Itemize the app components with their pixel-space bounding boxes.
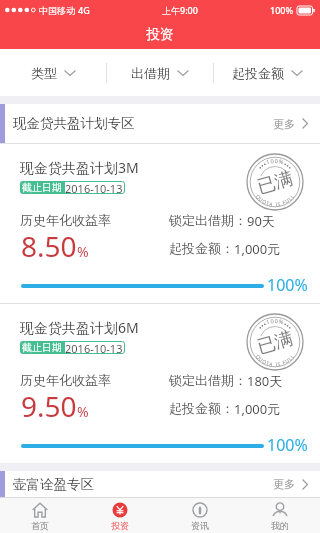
staticText: 起投金额 bbox=[232, 65, 284, 81]
button[interactable]: 现金贷共盈计划专区 bbox=[0, 104, 320, 143]
staticText: 4G bbox=[78, 4, 90, 16]
staticText: 资讯 bbox=[191, 520, 209, 531]
staticText: 首页 bbox=[31, 520, 49, 531]
staticText: 上午9:00 bbox=[162, 4, 198, 16]
staticText: 100% bbox=[267, 434, 308, 456]
button[interactable]: 起投金额 bbox=[214, 49, 320, 96]
staticText: 2016-10-13 bbox=[65, 341, 123, 354]
staticText: 90天 bbox=[247, 212, 275, 230]
staticText: 180天 bbox=[247, 372, 283, 390]
staticText: 更多 bbox=[273, 117, 295, 131]
staticText: 投资 bbox=[111, 520, 129, 531]
staticText: 壶富诠盈专区 bbox=[13, 476, 94, 493]
staticText: 100% bbox=[267, 274, 308, 296]
staticText: 9.50 bbox=[21, 387, 77, 425]
button[interactable]: 投资 bbox=[80, 498, 160, 533]
staticText: 2016-10-13 bbox=[65, 181, 123, 194]
staticText: 8.50 bbox=[21, 227, 77, 265]
button[interactable]: 现金贷共盈计划3M bbox=[0, 144, 320, 303]
staticText: 出借期 bbox=[131, 65, 170, 81]
staticText: 1,000元 bbox=[234, 240, 281, 258]
button[interactable]: 类型 bbox=[0, 49, 106, 96]
button[interactable]: 首页 bbox=[0, 498, 80, 533]
staticText: 投资 bbox=[146, 26, 174, 44]
staticText: 100% bbox=[270, 4, 294, 16]
staticText: 锁定出借期： bbox=[169, 212, 247, 228]
staticText: 我的 bbox=[271, 520, 289, 531]
staticText: 现金贷共盈计划专区 bbox=[13, 115, 135, 132]
staticText: 中国移动 bbox=[39, 5, 75, 16]
staticText: 1,000元 bbox=[234, 400, 281, 418]
staticText: 更多 bbox=[273, 477, 295, 491]
staticText: 锁定出借期： bbox=[169, 372, 247, 388]
button[interactable]: 壶富诠盈专区 bbox=[0, 471, 320, 497]
staticText: % bbox=[77, 402, 89, 421]
staticText: 起投金额： bbox=[169, 240, 234, 256]
staticText: 截止日期 bbox=[22, 181, 62, 194]
staticText: 起投金额： bbox=[169, 400, 234, 416]
staticText: 现金贷共盈计划6M bbox=[20, 318, 139, 337]
staticText: % bbox=[77, 242, 89, 261]
staticText: 现金贷共盈计划3M bbox=[20, 158, 139, 177]
staticText: 历史年化收益率 bbox=[20, 212, 111, 228]
button[interactable]: 现金贷共盈计划6M bbox=[0, 304, 320, 463]
staticText: 截止日期 bbox=[22, 341, 62, 354]
button[interactable]: 资讯 bbox=[160, 498, 240, 533]
staticText: 历史年化收益率 bbox=[20, 372, 111, 388]
staticText: 类型 bbox=[31, 65, 57, 81]
button[interactable]: 出借期 bbox=[107, 49, 213, 96]
button[interactable]: 我的 bbox=[240, 498, 320, 533]
